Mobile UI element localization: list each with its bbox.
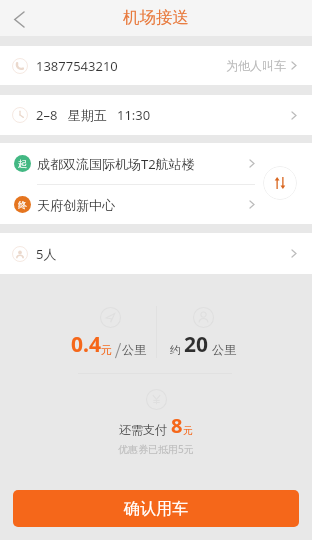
staticText: 公里 bbox=[122, 342, 146, 357]
button[interactable]: 终 bbox=[0, 185, 312, 224]
staticText: 5人 bbox=[36, 245, 57, 263]
staticText: 约 bbox=[170, 342, 184, 357]
button[interactable]: 13877543210 bbox=[0, 46, 312, 85]
staticText: 优惠券已抵用5元 bbox=[118, 442, 194, 456]
staticText: 成都双流国际机场T2航站楼 bbox=[37, 155, 195, 173]
button[interactable]: 确认用车 bbox=[13, 490, 299, 527]
staticText: 还需支付 bbox=[119, 421, 171, 437]
staticText: 13877543210 bbox=[36, 57, 118, 75]
staticText: 起 bbox=[18, 158, 27, 169]
staticText: 元 bbox=[101, 343, 112, 357]
button[interactable]: 5人 bbox=[0, 233, 312, 274]
staticText: 元 bbox=[183, 424, 193, 437]
staticText: 11:30 bbox=[117, 106, 151, 124]
staticText: 2–8 bbox=[36, 106, 58, 124]
staticText: 公里 bbox=[209, 341, 237, 357]
button[interactable]: Swap start and destination bbox=[263, 166, 297, 200]
staticText: 8 bbox=[171, 412, 183, 439]
button[interactable]: 2–8 bbox=[0, 95, 312, 135]
staticText: 机场接送 bbox=[123, 7, 189, 28]
staticText: 星期五 bbox=[68, 107, 107, 123]
staticText: 终 bbox=[18, 199, 27, 210]
button[interactable]: 起 bbox=[0, 143, 312, 184]
staticText: 20 bbox=[184, 330, 209, 359]
staticText: 确认用车 bbox=[124, 499, 188, 519]
staticText: 0.4 bbox=[71, 330, 101, 359]
staticText: 天府创新中心 bbox=[37, 197, 115, 213]
staticText: 为他人叫车 bbox=[226, 58, 286, 73]
button[interactable]: Back bbox=[0, 1, 38, 37]
